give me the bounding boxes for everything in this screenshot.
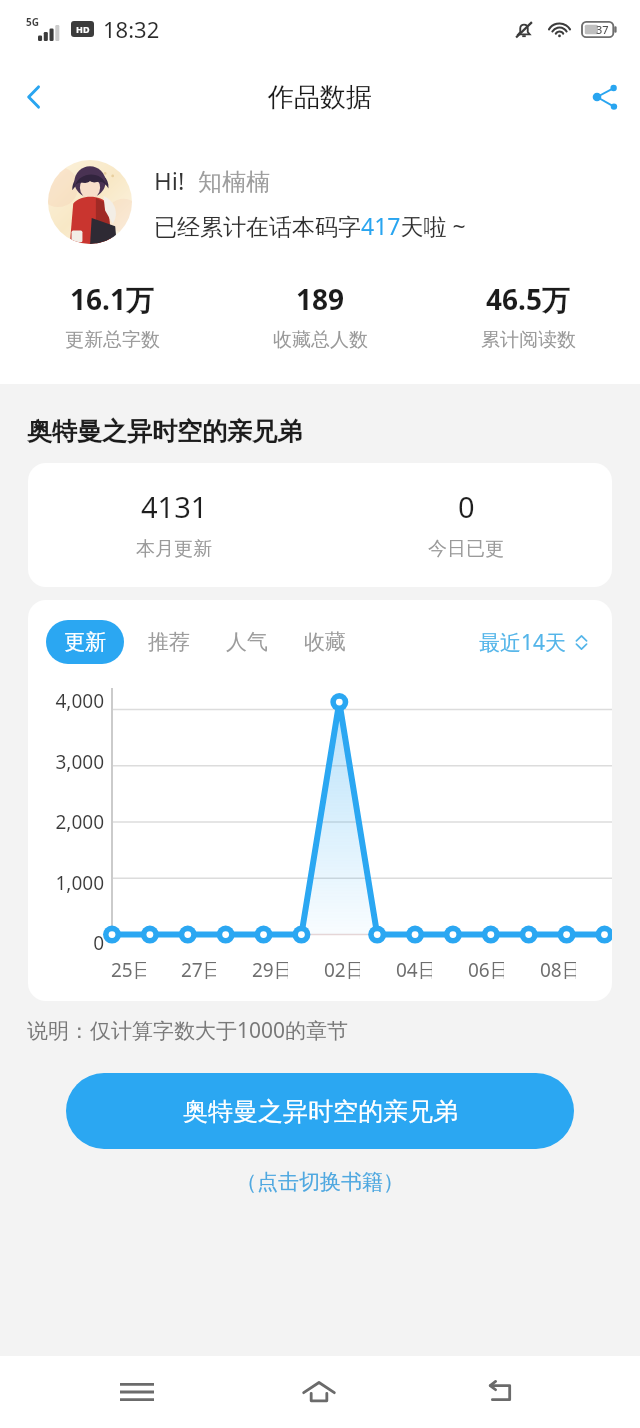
button[interactable]: 最近14天 [475,622,594,663]
button[interactable]: 16.1万 [8,280,216,352]
staticText: 更新 [64,629,106,655]
button[interactable]: 人气 [214,620,280,664]
staticText: 46.5万 [486,280,570,318]
button[interactable]: Share [570,62,640,132]
button[interactable]: Back [457,1356,547,1428]
staticText: 3,000 [55,749,104,775]
other: Silent mode [513,19,535,41]
button[interactable]: 推荐 [136,620,202,664]
staticText: HD [76,23,90,35]
staticText: 0 [458,487,475,526]
staticText: 奥特曼之异时空的亲兄弟 [183,1096,458,1127]
button[interactable]: 收藏 [292,620,358,664]
staticText: 推荐 [148,629,190,655]
staticText: 29日 [252,957,288,983]
staticText: 最近14天 [479,628,567,657]
button[interactable]: 奥特曼之异时空的亲兄弟 [66,1073,574,1149]
staticText: 人气 [226,629,268,655]
staticText: 06日 [468,957,504,983]
staticText: 更新总字数 [65,328,160,352]
button[interactable]: Recent apps [92,1356,182,1428]
staticText: 189 [296,280,345,318]
staticText: 奥特曼之异时空的亲兄弟 [27,416,302,447]
staticText: 25日 [111,957,146,983]
staticText: 4,000 [55,688,104,714]
staticText: 27日 [181,957,216,983]
staticText: 37 [596,22,609,37]
staticText: 已经累计在话本码字417天啦 ~ [154,210,466,241]
other: Wi-Fi [548,18,571,41]
staticText: 08日 [540,957,576,983]
staticText: 今日已更 [428,537,504,561]
staticText: 04日 [396,957,432,983]
staticText: 2,000 [55,809,104,835]
staticText: 0 [93,930,104,956]
staticText: （点击切换书籍） [236,1169,404,1195]
staticText: 知楠楠 [198,167,270,197]
button[interactable]: Back [0,63,68,131]
staticText: Hi! [154,164,185,197]
button[interactable]: 189 [216,280,424,352]
staticText: 本月更新 [136,537,212,561]
button[interactable]: （点击切换书籍） [224,1163,416,1201]
other: Battery 37 percent [582,20,618,39]
button[interactable]: 更新 [46,620,124,664]
staticText: 5G [26,15,39,29]
staticText: 收藏总人数 [273,328,368,352]
staticText: 18:32 [103,14,160,44]
staticText: 1,000 [55,870,104,896]
button[interactable]: 46.5万 [424,280,632,352]
staticText: 16.1万 [70,280,154,318]
staticText: 作品数据 [268,81,372,114]
staticText: 02日 [324,957,360,983]
button[interactable]: 4131 [28,463,612,587]
staticText: 说明：仅计算字数大于1000的章节 [27,1016,349,1045]
button[interactable]: Home [274,1356,364,1428]
staticText: 收藏 [304,629,346,655]
staticText: 4131 [141,487,208,526]
staticText: 累计阅读数 [481,328,576,352]
